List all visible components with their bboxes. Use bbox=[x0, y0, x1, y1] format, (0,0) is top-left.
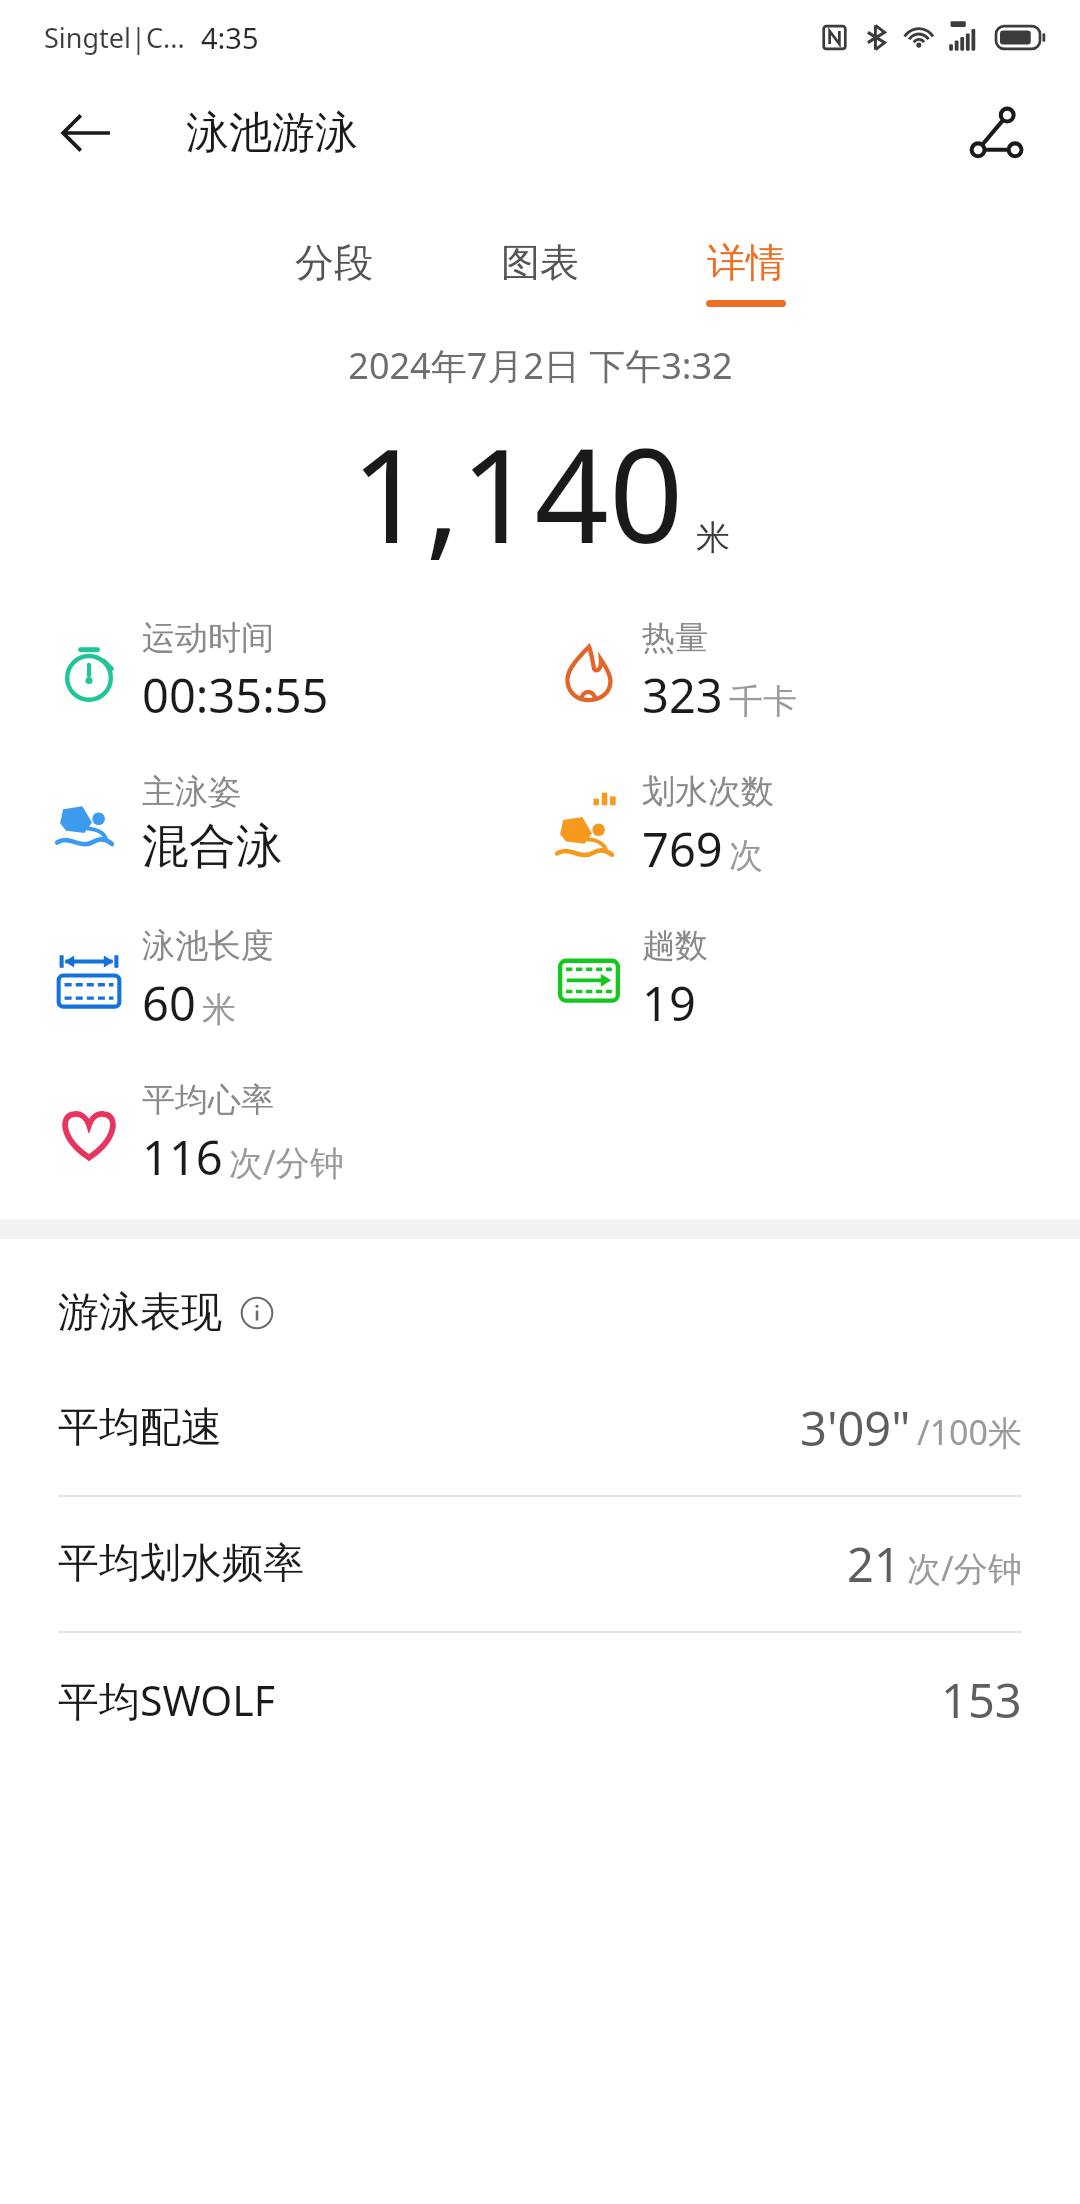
button[interactable]: 运动时间 bbox=[52, 617, 329, 727]
staticText: 1,140 bbox=[351, 404, 684, 581]
button[interactable]: 详情 bbox=[698, 238, 794, 307]
button[interactable]: 平均心率 bbox=[52, 1079, 344, 1189]
button[interactable]: 平均划水频率 bbox=[0, 1497, 1080, 1631]
staticText: 平均心率 bbox=[142, 1079, 274, 1121]
staticText: 60 bbox=[142, 971, 196, 1035]
button[interactable]: Share bbox=[956, 93, 1036, 173]
button[interactable]: Back bbox=[50, 97, 122, 169]
staticText: 323 bbox=[642, 663, 723, 727]
button[interactable]: 主泳姿 bbox=[52, 771, 283, 876]
staticText: 米 bbox=[202, 988, 236, 1031]
staticText: 3'09" bbox=[800, 1396, 911, 1460]
staticText: 4:35 bbox=[201, 18, 259, 57]
staticText: 泳池长度 bbox=[142, 925, 274, 967]
button[interactable]: 泳池长度 bbox=[52, 925, 274, 1035]
button[interactable]: Info bbox=[234, 1290, 280, 1336]
button[interactable]: 热量 bbox=[552, 617, 797, 727]
staticText: 2024年7月2日 下午3:32 bbox=[348, 341, 733, 390]
staticText: 平均划水频率 bbox=[58, 1538, 304, 1590]
staticText: 分段 bbox=[295, 238, 373, 287]
button[interactable]: 划水次数 bbox=[552, 771, 774, 881]
staticText: Singtel|C... bbox=[44, 19, 185, 56]
staticText: 00:35:55 bbox=[142, 663, 329, 727]
button[interactable]: 平均SWOLF bbox=[0, 1633, 1080, 1767]
staticText: 19 bbox=[642, 971, 696, 1035]
staticText: 平均SWOLF bbox=[58, 1672, 276, 1728]
staticText: 153 bbox=[941, 1668, 1022, 1732]
staticText: 详情 bbox=[707, 238, 785, 287]
staticText: 千卡 bbox=[729, 680, 797, 723]
staticText: 趟数 bbox=[642, 925, 708, 967]
button[interactable]: 平均配速 bbox=[0, 1361, 1080, 1495]
staticText: 图表 bbox=[501, 238, 579, 287]
staticText: 平均配速 bbox=[58, 1402, 222, 1454]
staticText: 热量 bbox=[642, 617, 708, 659]
staticText: 主泳姿 bbox=[142, 771, 241, 813]
staticText: 次 bbox=[729, 834, 763, 877]
button[interactable]: 趟数 bbox=[552, 925, 708, 1035]
staticText: 116 bbox=[142, 1125, 223, 1189]
staticText: 次/分钟 bbox=[907, 1545, 1022, 1591]
staticText: 划水次数 bbox=[642, 771, 774, 813]
staticText: 游泳表现 bbox=[58, 1287, 222, 1339]
staticText: 泳池游泳 bbox=[186, 106, 358, 160]
staticText: 769 bbox=[642, 817, 723, 881]
staticText: 次/分钟 bbox=[229, 1139, 344, 1185]
staticText: 米 bbox=[696, 516, 730, 559]
button[interactable]: 图表 bbox=[492, 238, 588, 307]
staticText: 混合泳 bbox=[142, 817, 283, 876]
staticText: 21 bbox=[847, 1532, 901, 1596]
button[interactable]: 分段 bbox=[286, 238, 382, 307]
staticText: 运动时间 bbox=[142, 617, 274, 659]
staticText: /100米 bbox=[917, 1409, 1022, 1455]
